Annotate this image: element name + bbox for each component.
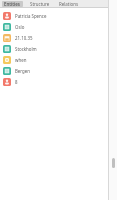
button[interactable]: Patricia Spence (0, 10, 108, 21)
staticText: Patricia Spence (15, 13, 47, 19)
staticText: when (15, 57, 27, 63)
staticText: Stockholm (15, 46, 37, 52)
staticText: 8 (15, 79, 18, 85)
staticText: Relations (59, 1, 78, 7)
staticText: Bergen (15, 68, 30, 74)
button[interactable]: Bergen (0, 65, 108, 76)
staticText: 21.10.35 (15, 35, 33, 41)
button[interactable]: 8 (0, 76, 108, 87)
button[interactable]: Structure (28, 1, 52, 7)
button[interactable]: Relations (57, 1, 80, 7)
button[interactable]: when (0, 54, 108, 65)
staticText: Oslo (15, 24, 25, 30)
button[interactable]: 21.10.35 (0, 32, 108, 43)
other: Scroll position (112, 158, 115, 168)
button[interactable]: Entities (2, 1, 23, 7)
button[interactable]: Stockholm (0, 43, 108, 54)
staticText: Entities (4, 1, 21, 7)
staticText: Structure (30, 1, 50, 7)
button[interactable]: Oslo (0, 21, 108, 32)
